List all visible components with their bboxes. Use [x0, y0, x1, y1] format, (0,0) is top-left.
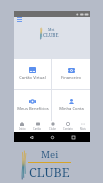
button[interactable]: Contato: [60, 121, 75, 132]
staticText: Início: [19, 127, 26, 131]
button[interactable]: Menu: [15, 15, 24, 24]
button[interactable]: Cartão Virtual: [14, 59, 51, 89]
staticText: Clube: [49, 127, 56, 131]
button[interactable]: Back: [27, 133, 35, 141]
staticText: Contato: [63, 127, 73, 131]
button[interactable]: Meus Benefícios: [14, 90, 51, 121]
staticText: Mais: [80, 127, 86, 131]
button[interactable]: Financeiro: [52, 59, 90, 89]
button[interactable]: Minha Conta: [52, 90, 90, 121]
button[interactable]: Clube: [45, 121, 60, 132]
staticText: Minha Conta: [59, 106, 84, 112]
button[interactable]: Home: [48, 133, 56, 141]
staticText: Mei: [48, 27, 55, 32]
button[interactable]: Cartão: [30, 121, 45, 132]
staticText: CLUBE: [43, 32, 59, 39]
button[interactable]: Recent apps: [69, 133, 77, 141]
button[interactable]: Mais: [75, 121, 90, 132]
staticText: Cartão: [33, 127, 42, 131]
staticText: Financeiro: [61, 75, 81, 81]
staticText: Mei: [41, 148, 59, 161]
staticText: Cartão Virtual: [19, 75, 46, 81]
staticText: CLUBE: [29, 164, 70, 181]
button[interactable]: Início: [14, 121, 30, 132]
staticText: Meus Benefícios: [17, 106, 49, 112]
